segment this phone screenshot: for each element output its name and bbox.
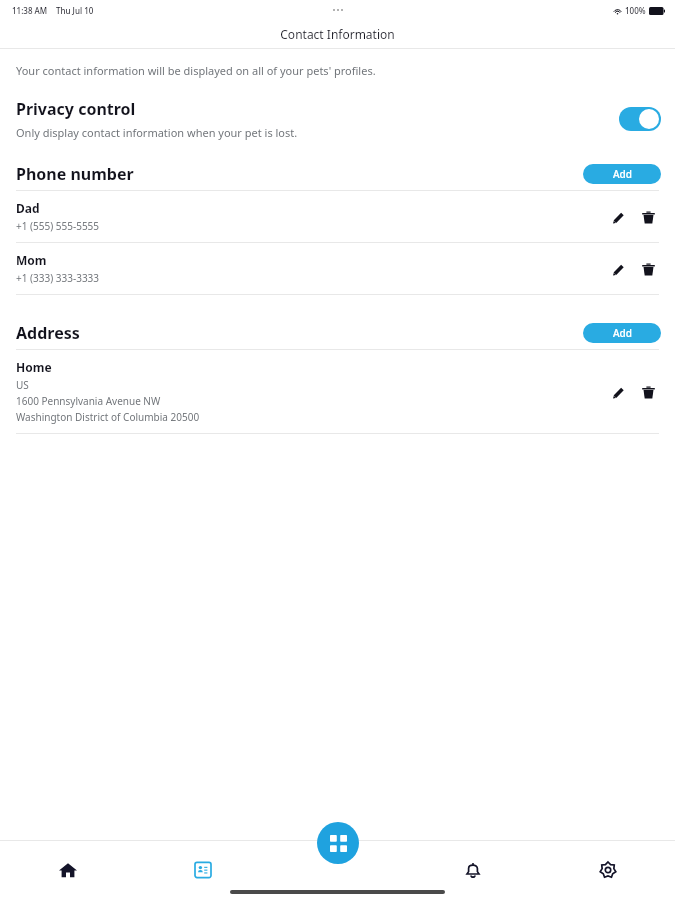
staticText: +1 (555) 555-5555 xyxy=(16,219,100,233)
staticText: Address xyxy=(16,322,583,344)
button[interactable]: Notifications xyxy=(405,846,540,894)
staticText: 11:38 AM xyxy=(12,5,48,16)
button[interactable]: Edit xyxy=(605,204,631,230)
staticText: Home xyxy=(16,359,52,375)
staticText: Thu Jul 10 xyxy=(56,5,94,16)
button[interactable]: Delete xyxy=(635,379,661,405)
staticText: Contact Information xyxy=(280,26,395,42)
staticText: 1600 Pennsylvania Avenue NW xyxy=(16,394,161,408)
staticText: Dad xyxy=(16,200,40,216)
staticText: Phone number xyxy=(16,163,583,185)
button[interactable]: Edit xyxy=(605,379,631,405)
staticText: Only display contact information when yo… xyxy=(16,125,298,140)
button[interactable]: Scan QR code xyxy=(317,822,359,864)
button[interactable]: Mom xyxy=(0,243,675,294)
button[interactable]: Home xyxy=(0,846,135,894)
button[interactable]: Add xyxy=(583,323,661,343)
staticText: US xyxy=(16,378,29,392)
staticText: Your contact information will be display… xyxy=(16,63,376,78)
button[interactable]: Dad xyxy=(0,191,675,242)
staticText: +1 (333) 333-3333 xyxy=(16,271,100,285)
button[interactable]: Delete xyxy=(635,256,661,282)
button[interactable]: Home xyxy=(0,350,675,433)
button[interactable]: Add xyxy=(583,164,661,184)
button[interactable]: Privacy control toggle xyxy=(619,107,661,131)
button[interactable]: Edit xyxy=(605,256,631,282)
button[interactable]: Contacts xyxy=(135,846,270,894)
button[interactable]: Delete xyxy=(635,204,661,230)
staticText: 100% xyxy=(625,5,646,16)
staticText: Privacy control xyxy=(16,98,136,120)
staticText: Add xyxy=(613,326,632,340)
staticText: Mom xyxy=(16,252,47,268)
button[interactable]: Settings xyxy=(540,846,675,894)
staticText: Add xyxy=(613,167,632,181)
staticText: Washington District of Columbia 20500 xyxy=(16,410,200,424)
